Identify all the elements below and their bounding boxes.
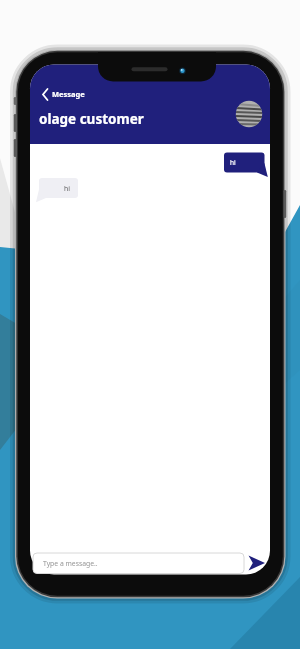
button[interactable] [33,553,244,574]
button[interactable] [38,84,92,104]
staticText: olage customer [39,110,144,128]
staticText: Message [52,89,85,99]
staticText: hi [230,158,236,167]
staticText: hi [64,184,70,193]
button[interactable] [235,100,263,128]
button[interactable] [245,552,269,574]
staticText: Type a message.. [43,559,98,568]
